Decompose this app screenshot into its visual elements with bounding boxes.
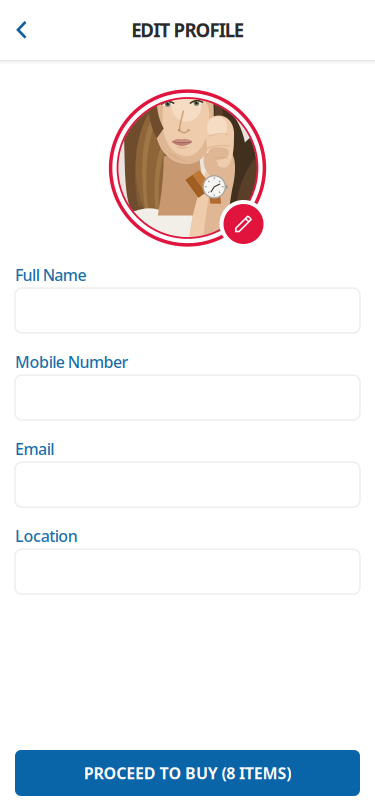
- staticText: Location: [15, 525, 78, 546]
- staticText: Mobile Number: [15, 351, 129, 372]
- button[interactable]: Change photo: [219, 200, 267, 248]
- button[interactable]: Back: [0, 8, 44, 52]
- staticText: EDIT PROFILE: [131, 18, 244, 42]
- button[interactable]: PROCEED TO BUY (8 ITEMS): [15, 750, 360, 796]
- staticText: Email: [15, 438, 54, 459]
- staticText: PROCEED TO BUY (8 ITEMS): [84, 762, 291, 784]
- staticText: Full Name: [15, 264, 86, 285]
